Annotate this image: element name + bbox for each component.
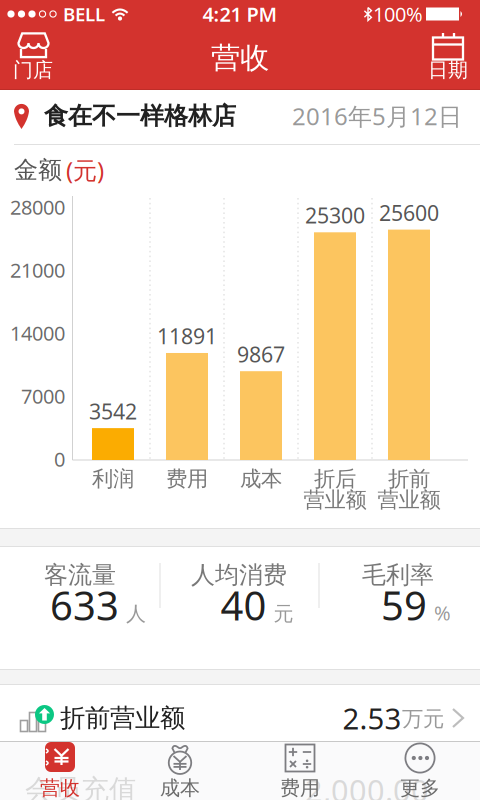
staticText: 14000	[10, 320, 65, 346]
staticText: 25600	[379, 198, 439, 227]
button[interactable]: 门店	[0, 27, 66, 87]
staticText: 4:21 PM	[202, 1, 277, 27]
staticText: 2.53	[342, 698, 401, 737]
staticText: 金额	[14, 155, 62, 185]
staticText: 门店	[13, 58, 53, 82]
staticText: 客流量	[44, 560, 116, 590]
staticText: 费用	[166, 466, 208, 492]
staticText: 0	[54, 446, 65, 472]
staticText: 元	[273, 602, 293, 626]
staticText: BELL	[63, 2, 105, 26]
button[interactable]: 费用	[245, 742, 355, 800]
staticText: 2,000.00	[305, 770, 429, 800]
staticText: 2016年5月12日	[292, 100, 462, 132]
staticText: 营收	[40, 776, 80, 800]
staticText: 食在不一样格林店	[44, 101, 236, 131]
staticText: 日期	[428, 58, 468, 82]
staticText: 7000	[21, 383, 65, 409]
staticText: 25300	[305, 201, 365, 229]
staticText: 9867	[237, 340, 285, 368]
staticText: 营业额	[377, 487, 440, 513]
staticText: 毛利率	[362, 560, 434, 590]
staticText: 营收	[211, 40, 269, 76]
staticText: 28000	[10, 194, 65, 220]
staticText: 100%	[373, 1, 423, 27]
staticText: %	[434, 599, 451, 626]
staticText: 3542	[89, 397, 137, 425]
button[interactable]: 折前营业额	[0, 685, 480, 741]
staticText: (元)	[66, 154, 104, 186]
staticText: 人	[126, 602, 146, 626]
staticText: 633	[50, 578, 119, 631]
staticText: 40	[220, 578, 266, 631]
staticText: 费用	[280, 776, 320, 800]
button[interactable]: 营收	[5, 742, 115, 800]
button[interactable]: 更多	[365, 742, 475, 800]
button[interactable]: 成本	[125, 742, 235, 800]
staticText: 会员充值	[25, 773, 137, 800]
button[interactable]: 日期	[415, 27, 480, 87]
staticText: 59	[381, 578, 427, 631]
staticText: 成本	[240, 466, 282, 492]
staticText: 11891	[157, 322, 217, 350]
staticText: 人均消费	[191, 560, 287, 590]
staticText: 折后	[314, 466, 356, 492]
staticText: 万元	[402, 706, 444, 732]
staticText: 21000	[10, 257, 65, 283]
staticText: 利润	[92, 466, 134, 492]
staticText: 更多	[400, 776, 440, 800]
button[interactable]: 食在不一样格林店	[0, 90, 480, 144]
staticText: 折前	[388, 466, 430, 492]
staticText: 成本	[160, 776, 200, 800]
staticText: 营业额	[303, 487, 366, 513]
staticText: 折前营业额	[60, 702, 185, 733]
